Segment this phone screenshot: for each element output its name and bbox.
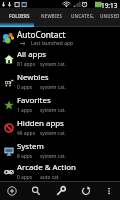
staticText: system cat. [40, 130, 66, 137]
button[interactable]: AutoContact [0, 27, 120, 47]
staticText: Last launched app [31, 40, 73, 47]
staticText: Arcade & Action [17, 162, 76, 173]
button[interactable]: All apps [0, 47, 120, 70]
staticText: system cat. [40, 84, 66, 91]
button[interactable]: Add folder [0, 182, 24, 200]
staticText: 19:13 [101, 1, 118, 8]
staticText: system cat. [40, 61, 66, 68]
button[interactable]: NEWBIES [38, 8, 66, 23]
button[interactable]: System [0, 139, 120, 162]
staticText: 0 apps [17, 84, 33, 91]
button[interactable]: Search [24, 182, 48, 200]
staticText: auto cat. [40, 174, 60, 181]
staticText: system cat. [40, 107, 66, 114]
staticText: Hidden apps [17, 118, 64, 129]
button[interactable]: FOLDERS [0, 8, 38, 23]
staticText: Favorites [17, 95, 51, 106]
staticText: Newbies [17, 72, 49, 83]
button[interactable]: UNCATEG. [66, 8, 100, 23]
button[interactable]: UNUSED [100, 8, 120, 23]
staticText: 8 apps [17, 153, 33, 160]
button[interactable]: Arcade & Action [0, 162, 120, 181]
button[interactable]: Newbies [0, 70, 120, 93]
button[interactable]: Tools [48, 182, 73, 200]
button[interactable]: Refresh [73, 182, 98, 200]
staticText: 1 apps [17, 107, 33, 114]
staticText: System [17, 141, 44, 152]
staticText: FOLDERS [9, 13, 30, 19]
staticText: NEWBIES [41, 13, 63, 19]
button[interactable]: More options [98, 182, 120, 200]
staticText: AutoContact [17, 29, 66, 40]
staticText: 0 apps [17, 174, 33, 181]
button[interactable]: Favorites [0, 93, 120, 116]
button[interactable]: Hidden apps [0, 116, 120, 139]
staticText: UNUSED [100, 13, 120, 19]
staticText: UNCATEG. [71, 13, 95, 19]
staticText: 46 apps [17, 130, 35, 137]
staticText: system cat. [40, 153, 66, 160]
staticText: 81 apps [17, 61, 35, 68]
staticText: All apps [17, 49, 47, 60]
